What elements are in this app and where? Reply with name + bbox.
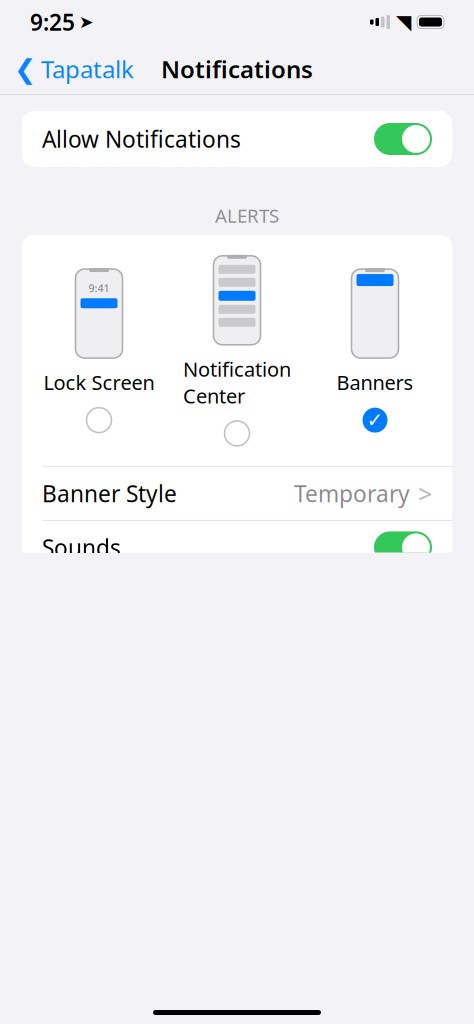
button[interactable]: 9:41	[30, 269, 168, 433]
button[interactable]: ❮	[0, 47, 148, 91]
button[interactable]: Notification Center	[168, 256, 306, 446]
staticText: ALERTS	[215, 203, 279, 228]
button[interactable]: Banners	[306, 269, 444, 433]
staticText: ❮	[14, 54, 36, 84]
staticText: Tapatalk	[41, 53, 134, 85]
staticText: Temporary	[294, 478, 410, 508]
staticText: Banners	[336, 369, 413, 396]
button[interactable]: Allow Notifications	[22, 111, 452, 167]
staticText: ➤	[79, 12, 94, 32]
staticText: >	[418, 477, 432, 510]
staticText: Allow Notifications	[42, 124, 241, 154]
staticText: 9:25	[30, 7, 75, 37]
button[interactable]: Sounds	[22, 521, 452, 574]
staticText: Banner Style	[42, 478, 177, 508]
staticText: Notifications	[161, 53, 313, 85]
staticText: Lock Screen	[43, 369, 154, 396]
staticText: ◥	[396, 11, 411, 33]
button[interactable]: Banner Style	[22, 467, 452, 520]
staticText: Sounds	[42, 532, 121, 562]
staticText: 9:41	[88, 281, 109, 295]
staticText: ✓	[366, 409, 383, 431]
staticText: Notification Center	[183, 356, 291, 409]
